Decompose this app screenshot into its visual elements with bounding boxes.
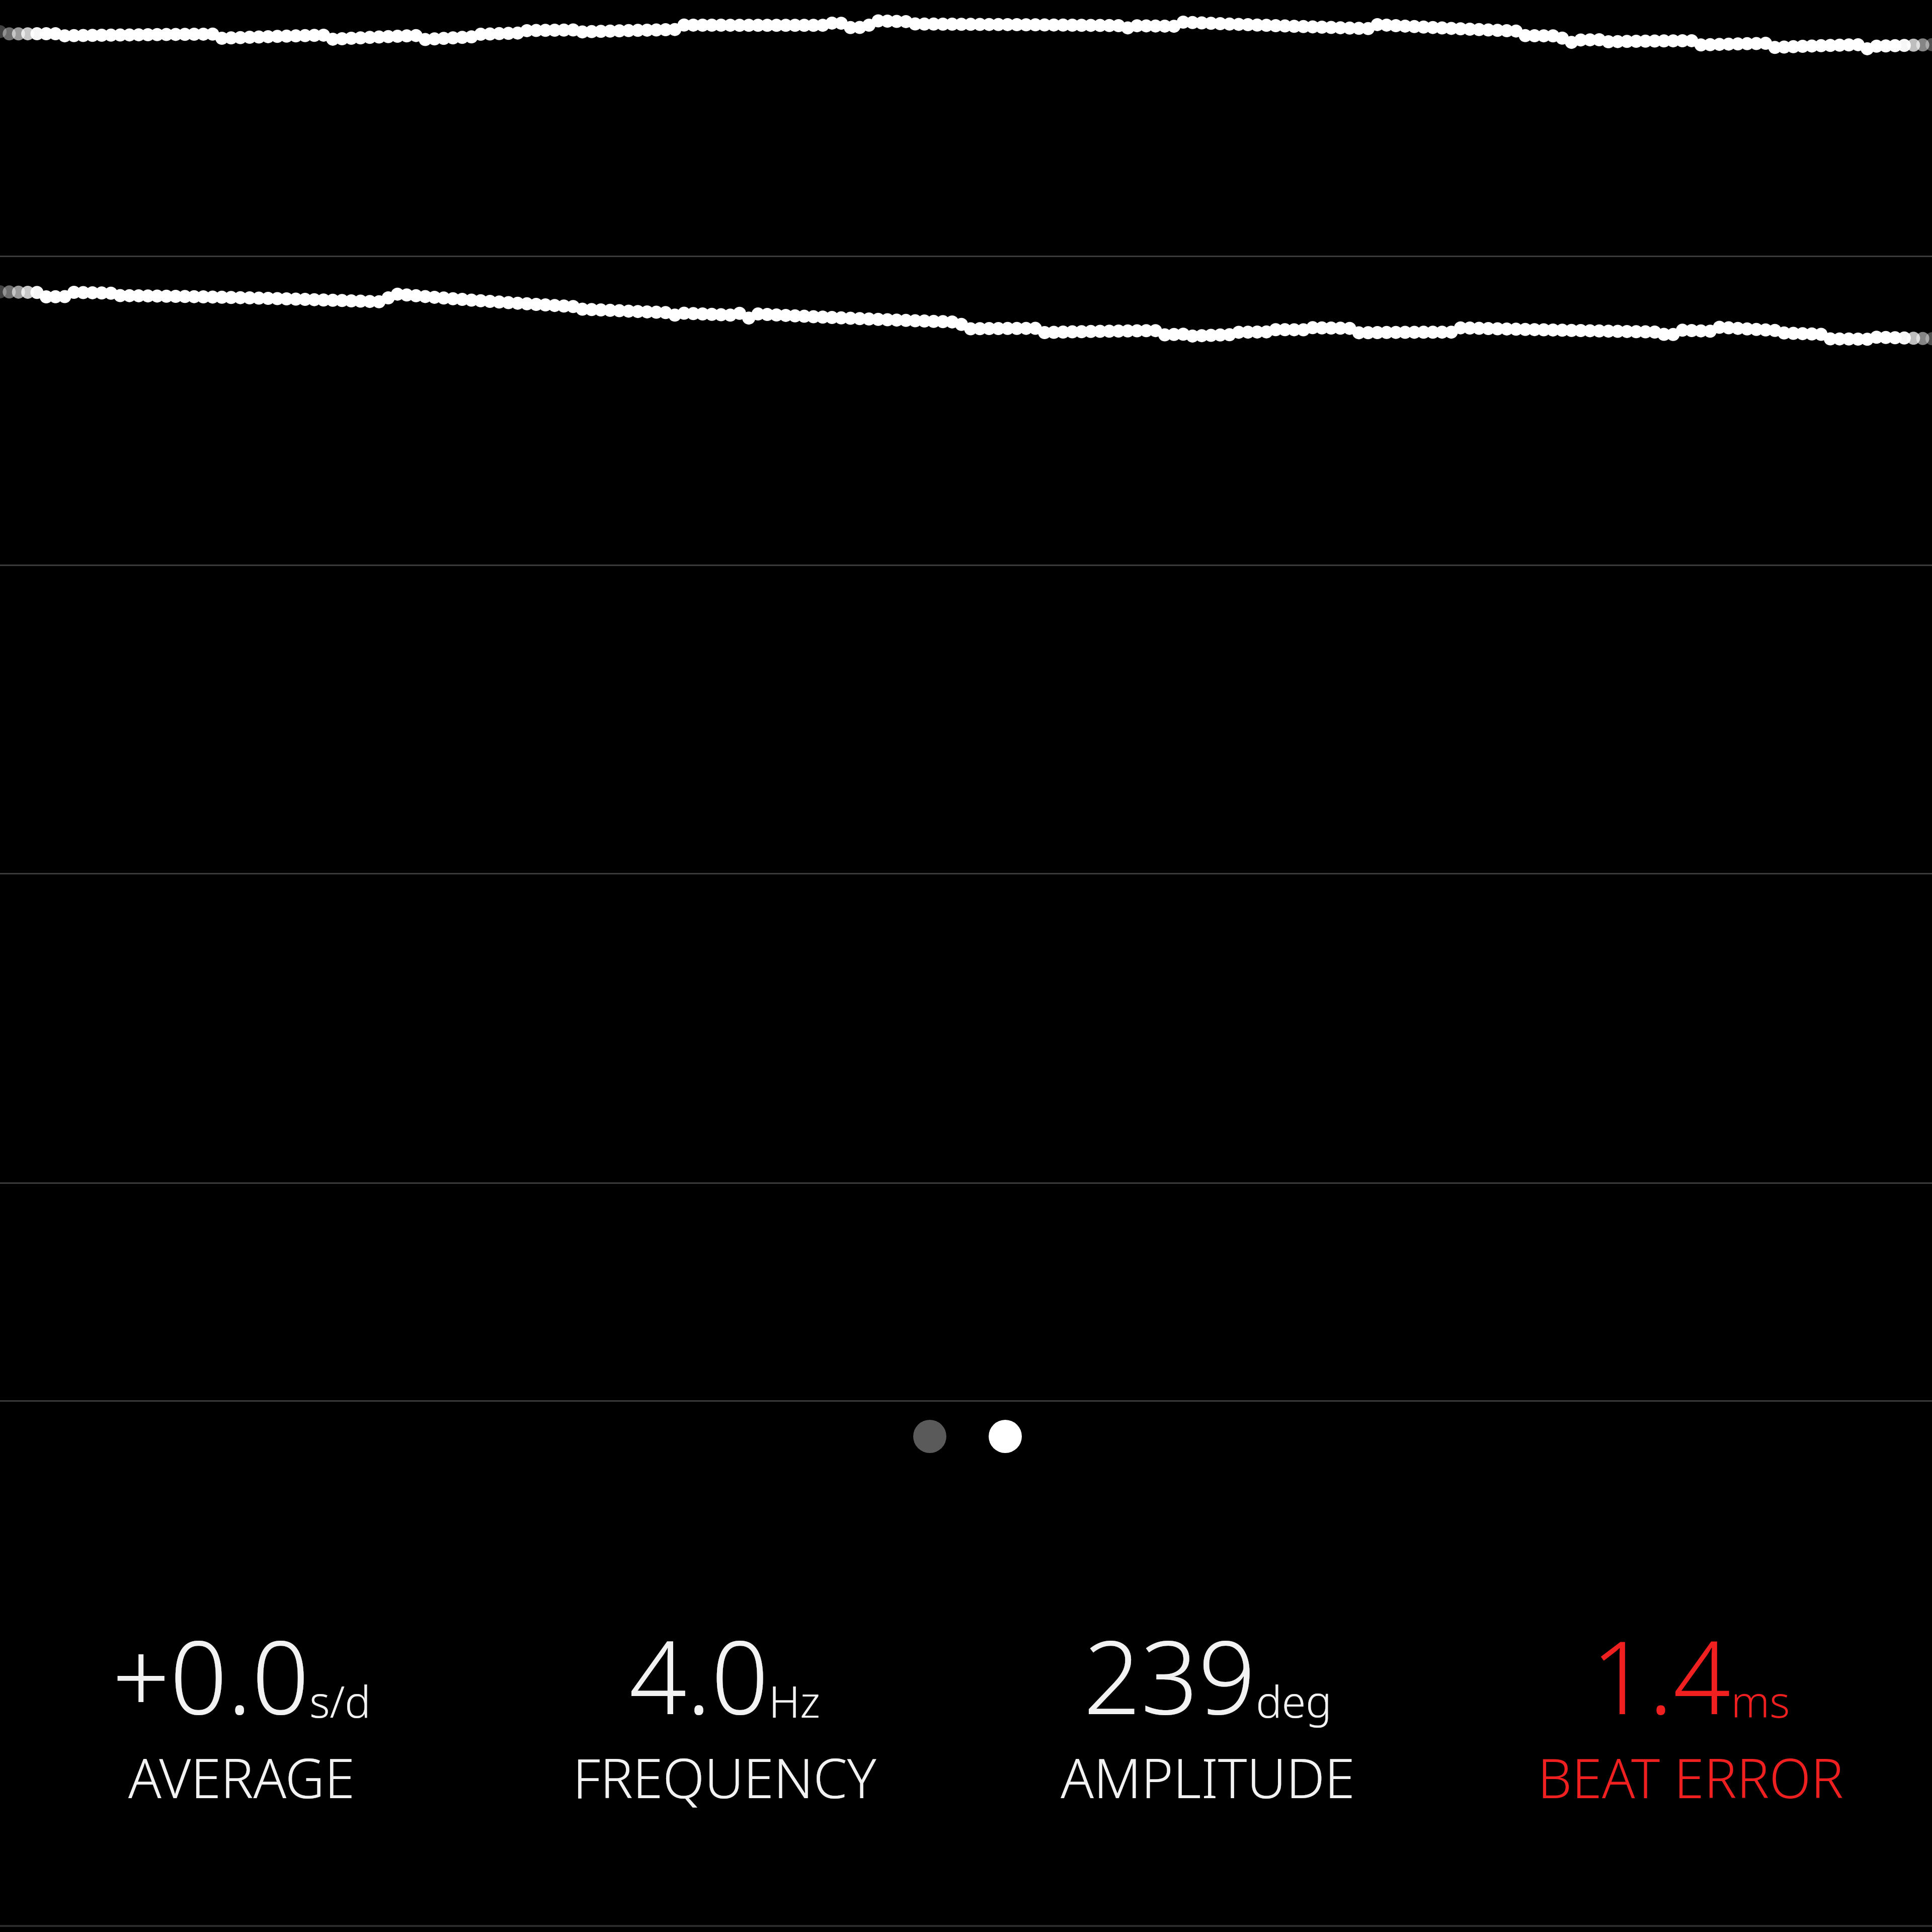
staticText: AVERAGE (128, 1740, 355, 1814)
button[interactable]: 1.4 (1449, 1602, 1932, 1817)
staticText: deg (1256, 1671, 1332, 1730)
button[interactable]: +0.0 (0, 1602, 483, 1817)
staticText: +0.0 (112, 1606, 309, 1743)
staticText: s/d (309, 1671, 371, 1730)
staticText: BEAT ERROR (1538, 1740, 1843, 1814)
button[interactable]: Page 2 (970, 1401, 1040, 1472)
button[interactable]: Page 1 (895, 1401, 965, 1472)
button[interactable]: 239 (966, 1602, 1449, 1817)
staticText: AMPLITUDE (1061, 1740, 1355, 1814)
staticText: Hz (769, 1671, 820, 1730)
staticText: 1.4 (1591, 1606, 1731, 1743)
staticText: FREQUENCY (573, 1740, 876, 1814)
staticText: ms (1731, 1671, 1790, 1730)
staticText: 4.0 (629, 1606, 769, 1743)
staticText: 239 (1083, 1606, 1256, 1743)
button[interactable]: 4.0 (483, 1602, 966, 1817)
